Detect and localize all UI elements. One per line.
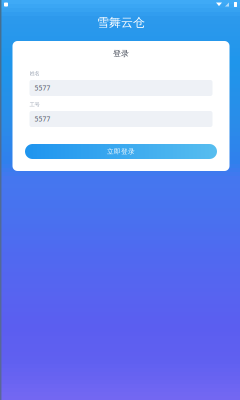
staticText: 5577	[34, 84, 50, 92]
button[interactable]: 5577	[29, 80, 212, 96]
button[interactable]: 5577	[29, 111, 212, 127]
staticText: 工号	[29, 101, 39, 108]
staticText: 5577	[34, 115, 50, 123]
staticText: 姓名	[29, 70, 39, 77]
button[interactable]: 立即登录	[25, 144, 216, 159]
staticText: 登录	[113, 49, 129, 58]
staticText: 立即登录	[107, 147, 135, 156]
staticText: 雪舞云仓	[97, 15, 145, 30]
